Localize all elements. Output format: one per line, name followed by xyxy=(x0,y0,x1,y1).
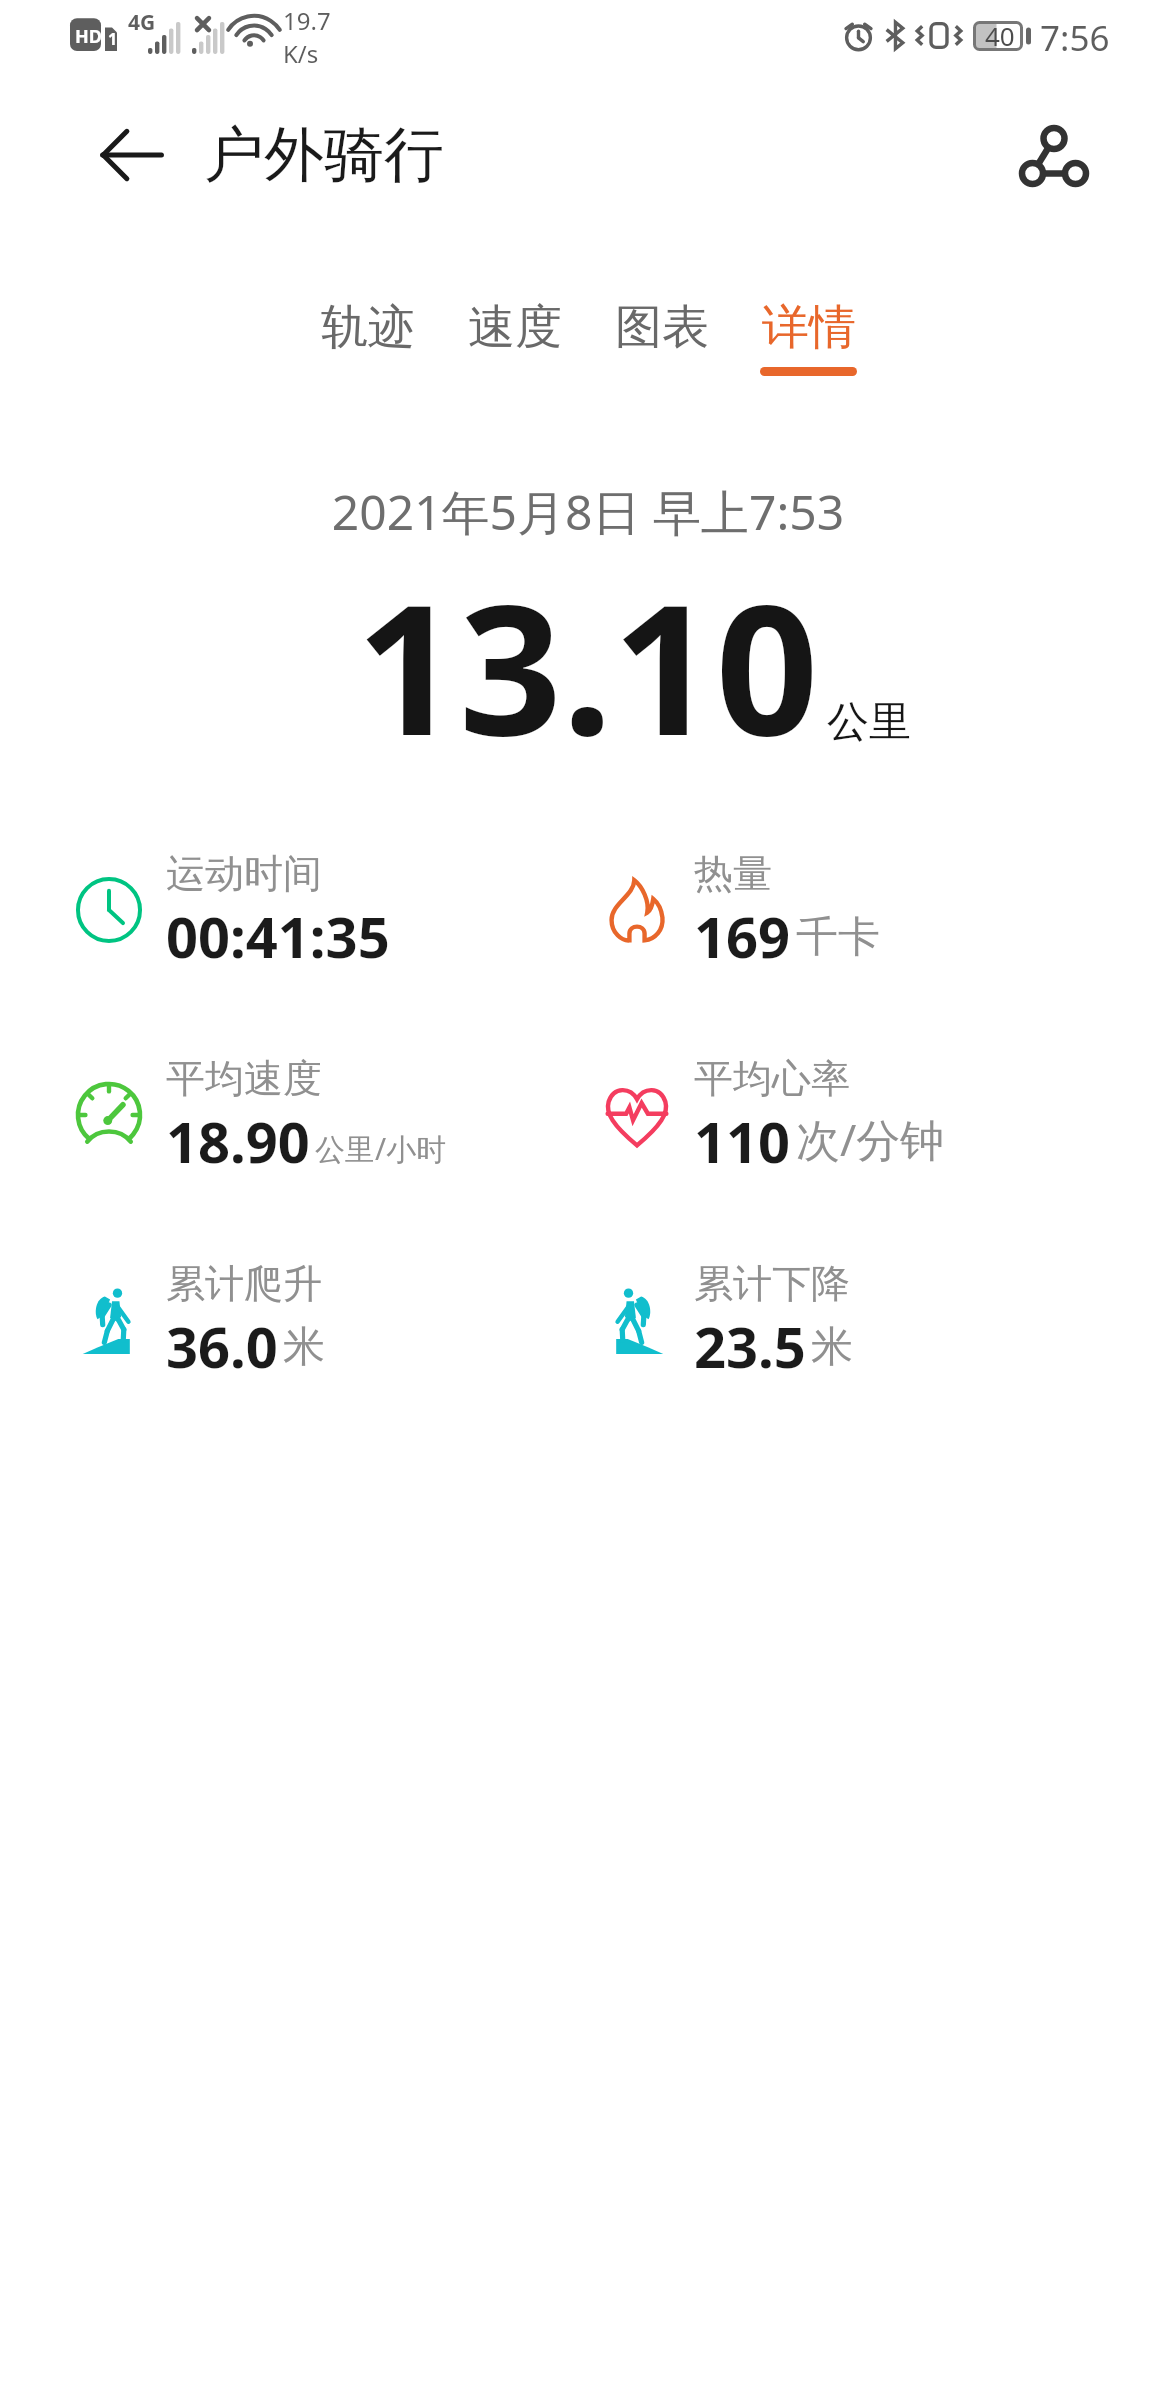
staticText: 平均心率 xyxy=(694,1054,850,1103)
staticText: 19.7 xyxy=(283,4,331,37)
staticText: 169 xyxy=(694,898,791,967)
button[interactable]: 轨迹 xyxy=(294,298,441,398)
staticText: 00:41:35 xyxy=(166,898,390,967)
staticText: 图表 xyxy=(615,298,709,357)
staticText: 运动时间 xyxy=(166,849,322,898)
staticText: 7:56 xyxy=(1040,14,1110,62)
button[interactable]: 详情 xyxy=(735,298,882,398)
staticText: 米 xyxy=(283,1321,325,1374)
button[interactable]: Back xyxy=(100,123,164,187)
staticText: 次/分钟 xyxy=(796,1109,945,1169)
button[interactable]: 运动时间 xyxy=(76,843,556,967)
button[interactable]: Share xyxy=(1010,112,1098,200)
staticText: 户外骑行 xyxy=(204,117,444,193)
button[interactable]: 速度 xyxy=(441,298,588,398)
staticText: 40 xyxy=(985,18,1015,53)
button[interactable]: 热量 xyxy=(604,843,1084,967)
button[interactable]: 平均心率 xyxy=(604,1048,1084,1172)
button[interactable]: 累计爬升 xyxy=(76,1253,556,1377)
staticText: 热量 xyxy=(694,849,772,898)
staticText: K/s xyxy=(283,37,319,70)
staticText: 36.0 xyxy=(166,1308,278,1377)
staticText: 平均速度 xyxy=(166,1054,322,1103)
staticText: 累计下降 xyxy=(694,1259,850,1308)
staticText: HD xyxy=(75,24,102,49)
staticText: 1 xyxy=(108,28,118,50)
button[interactable]: 平均速度 xyxy=(76,1048,556,1172)
staticText: 公里 xyxy=(827,696,911,749)
staticText: 米 xyxy=(811,1321,853,1374)
button[interactable]: 累计下降 xyxy=(604,1253,1084,1377)
staticText: 千卡 xyxy=(796,911,880,964)
staticText: 详情 xyxy=(762,298,856,357)
button[interactable]: 图表 xyxy=(588,298,735,398)
staticText: 公里/小时 xyxy=(315,1128,447,1169)
staticText: 轨迹 xyxy=(321,298,415,357)
staticText: 累计爬升 xyxy=(166,1259,322,1308)
staticText: 13.10 xyxy=(356,543,819,788)
staticText: 18.90 xyxy=(166,1103,310,1172)
staticText: 4G xyxy=(128,8,156,37)
staticText: 23.5 xyxy=(694,1308,806,1377)
staticText: 速度 xyxy=(468,298,562,357)
staticText: 2021年5月8日 早上7:53 xyxy=(0,479,1176,545)
staticText: 110 xyxy=(694,1103,791,1172)
